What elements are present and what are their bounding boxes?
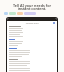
button[interactable] bbox=[17, 12, 23, 15]
staticText: Tell AI your needs for bbox=[0, 3, 64, 8]
button[interactable] bbox=[4, 12, 8, 15]
staticText: Content brief bbox=[7, 22, 57, 25]
button[interactable] bbox=[9, 12, 16, 15]
button[interactable] bbox=[24, 12, 36, 15]
staticText: instant content. bbox=[0, 6, 64, 11]
